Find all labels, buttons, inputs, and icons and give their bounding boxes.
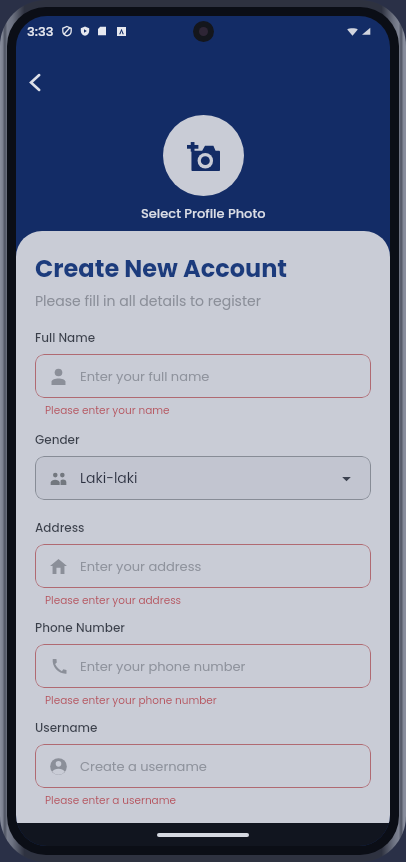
staticText: Enter your full name (80, 367, 210, 385)
staticText: Please fill in all details to register (35, 291, 261, 311)
staticText: Please enter a username (45, 793, 177, 808)
button[interactable]: Select Profile Photo (163, 115, 244, 196)
staticText: Enter your phone number (80, 657, 246, 675)
staticText: Address (35, 519, 85, 536)
staticText: Full Name (35, 329, 96, 346)
button[interactable]: Enter your full name (35, 354, 371, 398)
staticText: Phone Number (35, 619, 125, 636)
button[interactable]: Back (17, 64, 53, 100)
staticText: Gender (35, 431, 80, 448)
staticText: Enter your address (80, 557, 202, 575)
staticText: Please enter your phone number (45, 693, 217, 708)
staticText: Create New Account (35, 252, 288, 286)
staticText: Please enter your address (45, 593, 182, 608)
button[interactable]: Laki-laki (35, 456, 371, 500)
button[interactable]: Create a username (35, 744, 371, 788)
button[interactable]: Enter your address (35, 544, 371, 588)
button[interactable]: Enter your phone number (35, 644, 371, 688)
staticText: Create a username (80, 757, 207, 775)
staticText: 3:33 (27, 22, 54, 40)
staticText: Laki-laki (80, 468, 138, 488)
staticText: Username (35, 719, 98, 736)
staticText: Select Profile Photo (141, 204, 266, 222)
staticText: Please enter your name (45, 403, 170, 418)
